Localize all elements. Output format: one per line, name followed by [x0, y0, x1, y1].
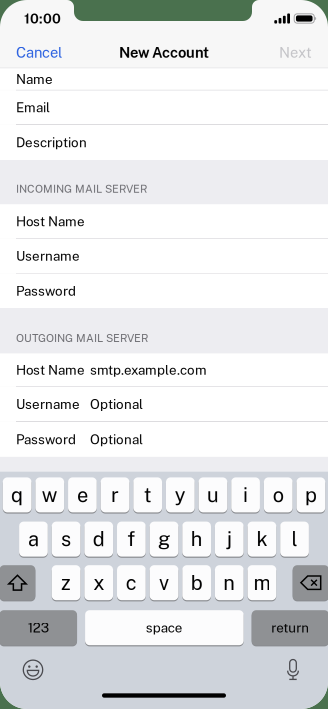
- staticText: y: [175, 483, 186, 507]
- staticText: a: [28, 527, 39, 551]
- staticText: Host Name: [16, 362, 85, 378]
- button[interactable]: u: [199, 477, 227, 513]
- staticText: j: [227, 527, 232, 551]
- staticText: r: [111, 483, 119, 507]
- staticText: d: [93, 527, 105, 551]
- button[interactable]: r: [101, 477, 129, 513]
- staticText: Email: [16, 100, 50, 115]
- staticText: k: [256, 527, 267, 551]
- button[interactable]: x: [84, 565, 113, 601]
- staticText: 10:00: [24, 10, 61, 27]
- staticText: smtp.example.com: [90, 362, 207, 378]
- button[interactable]: w: [35, 477, 64, 513]
- staticText: Optional: [90, 432, 143, 447]
- staticText: Description: [16, 135, 87, 150]
- button[interactable]: o: [264, 477, 293, 513]
- staticText: l: [292, 527, 298, 551]
- staticText: i: [243, 483, 248, 507]
- button[interactable]: h: [182, 521, 211, 557]
- button[interactable]: 123: [0, 610, 77, 646]
- staticText: s: [61, 527, 71, 551]
- button[interactable]: k: [248, 521, 276, 557]
- staticText: space: [146, 620, 183, 636]
- staticText: e: [77, 483, 88, 507]
- button[interactable]: b: [182, 565, 211, 601]
- staticText: q: [11, 483, 23, 507]
- staticText: z: [61, 571, 71, 594]
- staticText: Password: [16, 432, 76, 447]
- staticText: INCOMING MAIL SERVER: [16, 182, 147, 195]
- button[interactable]: g: [150, 521, 178, 557]
- button[interactable]: Emoji keyboard: [18, 655, 48, 685]
- staticText: w: [42, 483, 58, 507]
- staticText: Password: [16, 283, 76, 299]
- button[interactable]: y: [166, 477, 195, 513]
- button[interactable]: Cancel: [0, 37, 74, 68]
- button[interactable]: s: [52, 521, 80, 557]
- staticText: u: [207, 483, 219, 507]
- button[interactable]: space: [85, 610, 244, 646]
- staticText: p: [305, 483, 317, 507]
- staticText: v: [159, 571, 169, 594]
- staticText: t: [144, 483, 152, 507]
- button[interactable]: j: [215, 521, 244, 557]
- button[interactable]: t: [133, 477, 162, 513]
- staticText: Optional: [90, 396, 143, 412]
- staticText: Host Name: [16, 213, 85, 229]
- button[interactable]: p: [296, 477, 325, 513]
- button[interactable]: q: [3, 477, 31, 513]
- button[interactable]: f: [117, 521, 146, 557]
- staticText: f: [127, 527, 135, 551]
- button[interactable]: Dictate: [278, 655, 308, 685]
- button[interactable]: a: [19, 521, 48, 557]
- button[interactable]: Delete: [293, 565, 328, 601]
- staticText: 123: [28, 620, 49, 636]
- staticText: Cancel: [16, 44, 62, 61]
- staticText: Username: [16, 248, 80, 264]
- staticText: Username: [16, 396, 80, 412]
- staticText: Next: [279, 44, 312, 61]
- staticText: OUTGOING MAIL SERVER: [16, 332, 148, 344]
- button[interactable]: l: [280, 521, 309, 557]
- button[interactable]: Shift: [0, 565, 35, 601]
- staticText: b: [191, 571, 203, 594]
- button[interactable]: d: [84, 521, 113, 557]
- button[interactable]: v: [150, 565, 178, 601]
- staticText: Name: [16, 71, 53, 87]
- button[interactable]: i: [231, 477, 260, 513]
- staticText: g: [158, 527, 170, 551]
- button[interactable]: e: [68, 477, 97, 513]
- button[interactable]: n: [215, 565, 244, 601]
- staticText: return: [271, 620, 309, 636]
- staticText: n: [223, 571, 235, 594]
- button[interactable]: m: [248, 565, 276, 601]
- staticText: c: [126, 571, 137, 594]
- staticText: New Account: [119, 44, 209, 61]
- button[interactable]: Next: [267, 37, 328, 68]
- staticText: o: [273, 483, 284, 507]
- staticText: m: [253, 571, 270, 594]
- staticText: h: [191, 527, 203, 551]
- button[interactable]: return: [252, 610, 328, 646]
- button[interactable]: z: [52, 565, 80, 601]
- button[interactable]: c: [117, 565, 146, 601]
- staticText: x: [93, 571, 104, 594]
